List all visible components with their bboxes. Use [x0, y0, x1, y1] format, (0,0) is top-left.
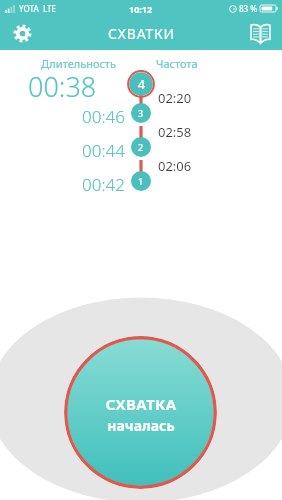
staticText: 02:20 [158, 89, 192, 107]
staticText: СХВАТКА [105, 394, 177, 414]
button[interactable]: СХВАТКА [64, 336, 217, 489]
button[interactable]: 4 [127, 70, 155, 98]
staticText: началась [107, 416, 175, 435]
staticText: 00:42 [82, 173, 125, 195]
button[interactable]: 3 [131, 103, 151, 123]
staticText: 00:38 [28, 68, 97, 105]
staticText: 02:06 [158, 157, 192, 175]
staticText: Длительность [41, 56, 116, 71]
staticText: 1 [138, 175, 144, 187]
staticText: YOTA [19, 3, 39, 14]
staticText: 4 [138, 76, 145, 92]
staticText: СХВАТКИ [108, 24, 175, 43]
staticText: 00:46 [82, 105, 125, 127]
staticText: 00:44 [82, 139, 125, 161]
button[interactable]: 2 [131, 137, 151, 157]
staticText: 83 % [239, 3, 258, 14]
button[interactable]: Guide [238, 17, 282, 50]
staticText: 2 [138, 141, 144, 153]
staticText: Частота [156, 56, 198, 71]
staticText: LTE [43, 3, 57, 14]
button[interactable]: 1 [131, 171, 151, 191]
staticText: 10:12 [129, 3, 153, 15]
staticText: 3 [138, 107, 144, 119]
button[interactable]: Settings [0, 17, 44, 50]
staticText: 02:58 [158, 123, 192, 141]
